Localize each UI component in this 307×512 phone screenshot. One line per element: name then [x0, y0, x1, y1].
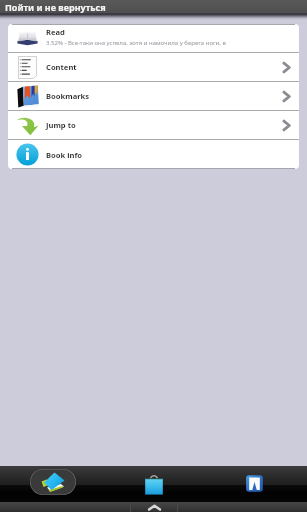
staticText: Content: [46, 62, 280, 72]
button[interactable]: Jump to: [8, 111, 299, 139]
staticText: Book info: [46, 150, 299, 160]
button[interactable]: Home: [142, 472, 165, 495]
button[interactable]: Read: [8, 24, 299, 52]
button[interactable]: Book info: [8, 140, 299, 169]
staticText: Bookmarks: [46, 91, 280, 101]
staticText: 3.52% - Все-таки она успела, хотя и намо…: [46, 39, 226, 47]
button[interactable]: Back: [30, 469, 76, 495]
staticText: Пойти и не вернуться: [5, 1, 106, 13]
staticText: Read: [46, 27, 65, 37]
staticText: Jump to: [46, 120, 280, 130]
button[interactable]: Bookmarks: [8, 82, 299, 110]
button[interactable]: Content: [8, 53, 299, 81]
button[interactable]: Recent apps: [244, 473, 264, 493]
